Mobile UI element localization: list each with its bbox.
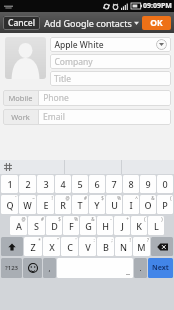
button[interactable]: Mobile xyxy=(3,90,171,106)
staticText: O xyxy=(144,199,152,211)
staticText: ! xyxy=(51,195,53,201)
button[interactable]: G xyxy=(80,216,96,235)
button[interactable]: T xyxy=(72,195,88,214)
staticText: 0 xyxy=(162,178,168,190)
button[interactable]: ?123 xyxy=(1,258,22,278)
button[interactable]: I xyxy=(123,195,139,214)
staticText: Title xyxy=(54,73,71,85)
staticText: Next xyxy=(152,263,169,273)
button[interactable]: Y xyxy=(89,195,105,214)
button[interactable]: Apple White xyxy=(50,37,171,52)
staticText: % xyxy=(74,216,78,222)
button[interactable]: K xyxy=(131,216,147,235)
button[interactable]: U xyxy=(106,195,122,214)
button[interactable]: 1 xyxy=(1,175,18,193)
staticText: N xyxy=(120,241,127,253)
staticText: L xyxy=(154,220,159,232)
button[interactable]: A xyxy=(10,216,27,235)
staticText: @ xyxy=(21,216,26,222)
staticText: 6 xyxy=(94,178,100,190)
button[interactable]: 8 xyxy=(123,175,139,193)
button[interactable]: Mobile xyxy=(3,90,38,106)
staticText: Add Google contacts xyxy=(44,17,132,29)
button[interactable]: Work xyxy=(3,109,171,125)
staticText: F xyxy=(69,220,74,232)
button[interactable]: W xyxy=(19,195,36,214)
button[interactable]: Backspace xyxy=(151,237,173,256)
staticText: @ xyxy=(65,195,70,201)
button[interactable]: Company xyxy=(50,54,171,69)
staticText: ( xyxy=(170,195,172,201)
button[interactable]: M xyxy=(133,237,150,256)
button[interactable]: Space xyxy=(57,258,133,278)
button[interactable]: B xyxy=(97,237,114,256)
staticText: Z xyxy=(30,241,36,253)
button[interactable]: 7 xyxy=(106,175,122,193)
button[interactable]: Title xyxy=(50,71,171,86)
staticText: 8 xyxy=(128,178,134,190)
button[interactable]: Emoji xyxy=(23,258,42,278)
staticText: ~ xyxy=(32,195,35,201)
button[interactable]: Input settings xyxy=(4,163,12,171)
button[interactable]: . xyxy=(134,258,147,278)
button[interactable]: Shift xyxy=(1,237,23,256)
button[interactable]: Z xyxy=(24,237,42,256)
button[interactable]: Q xyxy=(1,195,18,214)
staticText: P xyxy=(162,199,168,211)
button[interactable]: 0 xyxy=(157,175,173,193)
staticText: & xyxy=(91,216,95,222)
staticText: " xyxy=(57,237,59,243)
staticText: Q xyxy=(6,199,14,211)
staticText: 5 xyxy=(77,178,83,190)
button[interactable]: Add Google contacts xyxy=(44,17,139,29)
staticText: 9 xyxy=(145,178,151,190)
button[interactable]: Cancel xyxy=(3,16,40,30)
button[interactable]: O xyxy=(140,195,156,214)
button[interactable]: Contact photo xyxy=(5,37,46,79)
button[interactable]: H xyxy=(97,216,113,235)
staticText: Apple White xyxy=(54,39,104,51)
button[interactable]: 6 xyxy=(89,175,105,193)
staticText: T xyxy=(77,199,83,211)
button[interactable]: 2 xyxy=(19,175,36,193)
staticText: A xyxy=(16,220,22,232)
button[interactable]: Next xyxy=(148,258,173,278)
staticText: S xyxy=(34,220,39,232)
button[interactable]: Work xyxy=(3,109,38,125)
staticText: Phone xyxy=(43,92,69,104)
staticText: ( xyxy=(144,216,146,222)
button[interactable]: X xyxy=(43,237,60,256)
button[interactable]: 3 xyxy=(37,175,54,193)
button[interactable]: R xyxy=(55,195,71,214)
button[interactable]: Expand name xyxy=(152,37,171,52)
button[interactable]: D xyxy=(46,216,62,235)
staticText: M xyxy=(137,241,146,253)
button[interactable]: J xyxy=(114,216,130,235)
staticText: & xyxy=(151,195,155,201)
staticText: ? xyxy=(147,237,149,243)
button[interactable]: 9 xyxy=(140,175,156,193)
button[interactable]: V xyxy=(79,237,96,256)
button[interactable]: N xyxy=(115,237,132,256)
button[interactable]: , xyxy=(43,258,56,278)
staticText: + xyxy=(126,216,129,222)
staticText: # xyxy=(84,195,87,201)
staticText: 2 xyxy=(25,178,31,190)
button[interactable]: F xyxy=(63,216,79,235)
staticText: B xyxy=(103,241,109,253)
button[interactable]: P xyxy=(157,195,173,214)
button[interactable]: OK xyxy=(142,16,171,30)
staticText: ; xyxy=(111,237,113,243)
button[interactable]: C xyxy=(61,237,78,256)
staticText: Work xyxy=(11,112,30,122)
button[interactable]: 5 xyxy=(72,175,88,193)
staticText: - xyxy=(110,216,112,222)
button[interactable]: L xyxy=(148,216,164,235)
button[interactable]: 4 xyxy=(55,175,71,193)
staticText: , xyxy=(48,263,51,273)
staticText: ' xyxy=(75,237,77,243)
staticText: J xyxy=(121,220,124,232)
button[interactable]: E xyxy=(37,195,54,214)
staticText: 4 xyxy=(60,178,66,190)
button[interactable]: S xyxy=(28,216,45,235)
